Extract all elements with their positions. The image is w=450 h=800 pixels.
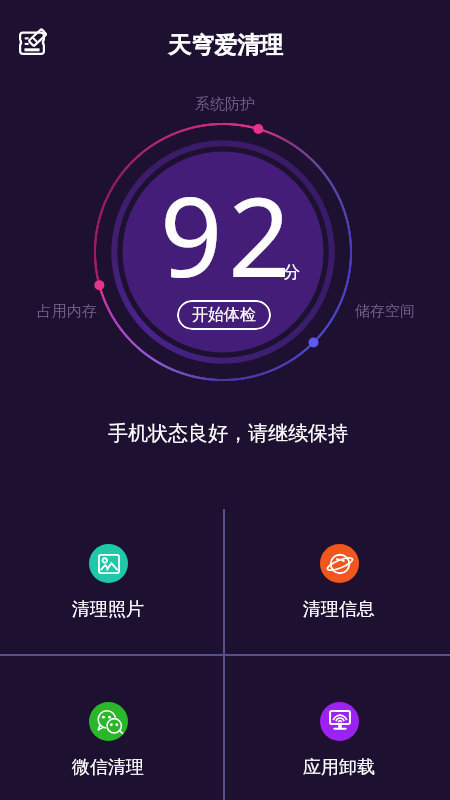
button[interactable]: Feedback (19, 29, 45, 55)
staticText: 开始体检 (192, 305, 256, 325)
staticText: 占用内存 (37, 302, 97, 321)
staticText: 天穹爱清理 (168, 31, 283, 60)
staticText: 清理信息 (303, 598, 375, 621)
button[interactable]: 开始体检 (177, 300, 271, 330)
staticText: 清理照片 (72, 598, 144, 621)
staticText: 手机状态良好，请继续保持 (108, 421, 348, 446)
button[interactable]: 清理信息 (277, 537, 401, 623)
button[interactable]: 应用卸载 (277, 695, 401, 781)
staticText: 分 (283, 262, 300, 283)
staticText: 微信清理 (72, 756, 144, 779)
staticText: 储存空间 (355, 302, 415, 321)
staticText: 应用卸载 (303, 756, 375, 779)
staticText: 92 (160, 160, 297, 308)
button[interactable]: 清理照片 (46, 537, 170, 623)
button[interactable]: 微信清理 (46, 695, 170, 781)
staticText: 系统防护 (195, 95, 255, 114)
